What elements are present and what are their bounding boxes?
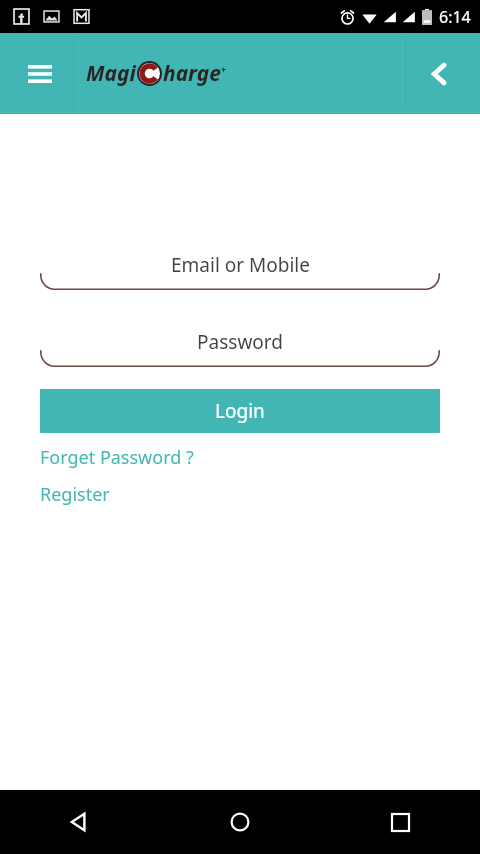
staticText: Magi — [86, 59, 136, 88]
button[interactable]: Recent apps — [320, 790, 480, 854]
button[interactable]: Email or Mobile — [40, 250, 440, 290]
staticText: Forget Password ? — [40, 445, 194, 470]
staticText: + — [221, 63, 227, 75]
button[interactable]: Magi — [86, 59, 227, 88]
button[interactable]: Back — [0, 790, 160, 854]
staticText: 6:14 — [439, 6, 471, 28]
button[interactable]: Back — [414, 49, 464, 99]
button[interactable]: Menu — [14, 48, 66, 100]
button[interactable]: Register — [40, 482, 110, 507]
button[interactable]: Login — [40, 389, 440, 433]
staticText: Email or Mobile — [171, 252, 310, 278]
button[interactable]: Password — [40, 327, 440, 367]
button[interactable]: Forget Password ? — [40, 445, 194, 470]
staticText: Password — [197, 329, 283, 355]
staticText: Login — [215, 398, 265, 424]
staticText: harge — [163, 59, 221, 88]
button[interactable]: Home — [160, 790, 320, 854]
staticText: Register — [40, 482, 110, 507]
